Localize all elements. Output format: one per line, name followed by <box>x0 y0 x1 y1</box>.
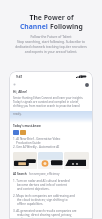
button[interactable]: Article image <box>64 152 89 169</box>
staticText: 9:41 <box>16 75 23 79</box>
staticText: Today's must-know <box>13 124 41 128</box>
staticText: 3. AI-generated search results companies… <box>13 209 77 219</box>
staticText: Hi, Allen! <box>13 90 28 94</box>
staticText: Channel <box>20 22 50 31</box>
staticText: Following <box>50 22 83 31</box>
staticText: 1. Turn on radar and AI cultural branded… <box>13 179 70 191</box>
staticText: The Power of <box>29 13 74 22</box>
staticText: Follow the Future of Talent Stop searchi… <box>0 34 102 54</box>
staticText: AI Search <box>13 172 27 176</box>
button[interactable]: Article image <box>13 152 37 169</box>
staticText: Senior Hunting Ethan Connect and learn y… <box>13 96 84 108</box>
staticText: ready. <box>13 112 22 116</box>
staticText: for everyone, efficiency <box>29 172 60 176</box>
staticText: 2. Maps tech companies are addressing an… <box>13 194 75 206</box>
button[interactable]: Profile <box>84 82 89 87</box>
button[interactable]: Menu <box>12 82 17 87</box>
staticText: 1. AI New Brief - Generative Video Produ… <box>13 137 61 149</box>
button[interactable]: Article image <box>38 152 63 169</box>
